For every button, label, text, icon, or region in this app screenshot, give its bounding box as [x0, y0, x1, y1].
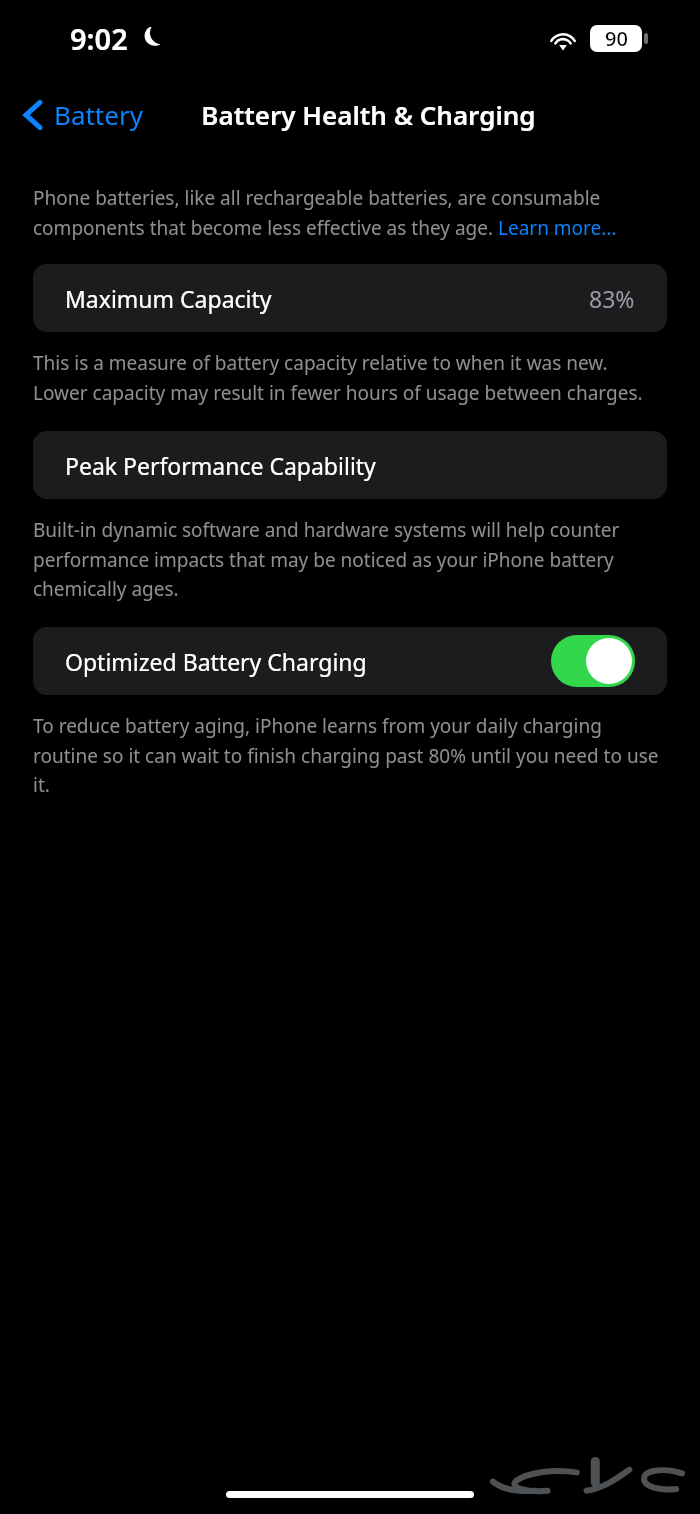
button[interactable]: Optimized Battery Charging toggle, on — [551, 635, 635, 687]
staticText: This is a measure of battery capacity re… — [33, 350, 667, 405]
staticText: Battery Health & Charging — [201, 97, 536, 132]
staticText: Phone batteries, like all rechargeable b… — [33, 185, 667, 240]
staticText: 9:02 — [70, 19, 128, 58]
staticText: Battery — [54, 97, 143, 132]
staticText: 83% — [589, 283, 635, 314]
button[interactable]: Peak Performance Capability — [33, 431, 667, 499]
staticText: Built-in dynamic software and hardware s… — [33, 517, 667, 601]
staticText: 90 — [605, 25, 628, 52]
staticText: Maximum Capacity — [65, 283, 272, 314]
button[interactable]: Maximum Capacity — [33, 264, 667, 332]
staticText: To reduce battery aging, iPhone learns f… — [33, 713, 667, 797]
staticText: Optimized Battery Charging — [65, 646, 367, 677]
button[interactable]: Battery — [16, 91, 149, 138]
staticText: Peak Performance Capability — [65, 450, 376, 481]
button[interactable]: Optimized Battery Charging — [33, 627, 667, 695]
